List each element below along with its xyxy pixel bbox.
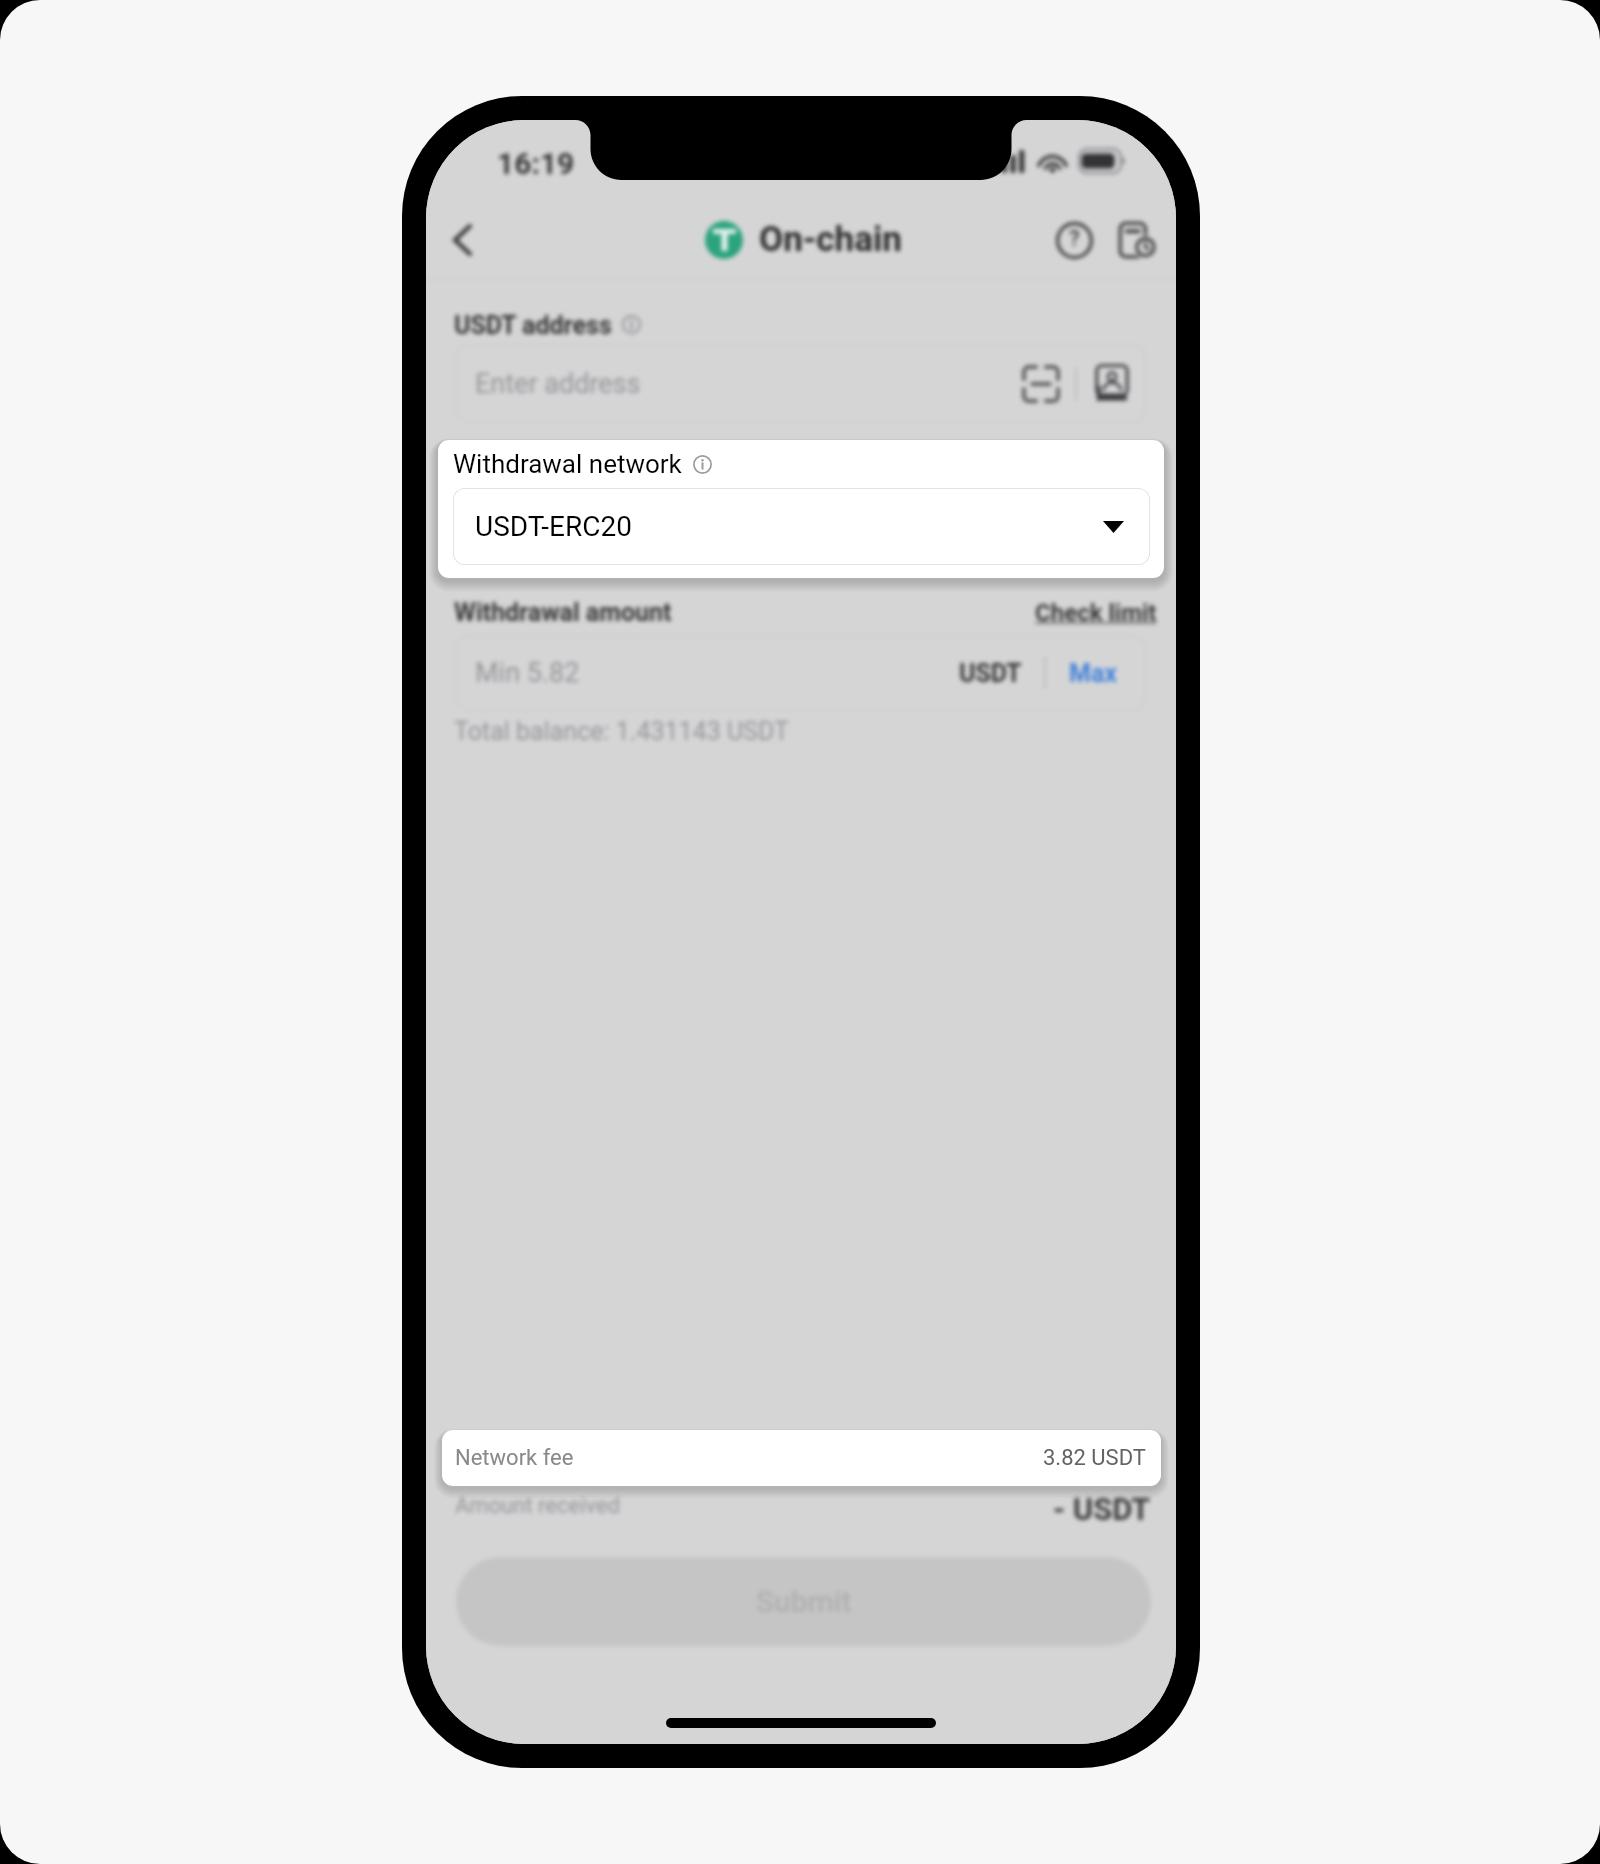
- staticText: Withdrawal network: [454, 458, 677, 487]
- button[interactable]: Help: [1046, 212, 1102, 268]
- staticText: On-chain: [759, 219, 902, 260]
- button[interactable]: More information: [693, 455, 712, 474]
- staticText: USDT: [959, 659, 1022, 688]
- button[interactable]: USDT-ERC20: [453, 488, 1150, 565]
- staticText: Max: [1069, 659, 1118, 688]
- button[interactable]: Scan QR code: [1018, 361, 1064, 407]
- button[interactable]: Min 5.82: [456, 636, 1146, 710]
- staticText: Network fee: [455, 1445, 574, 1471]
- staticText: 16:19: [497, 146, 575, 181]
- staticText: Check limit: [1035, 599, 1157, 627]
- button[interactable]: Network fee: [442, 1430, 1161, 1486]
- staticText: USDT address: [454, 311, 612, 340]
- button[interactable]: Back: [431, 209, 493, 271]
- button[interactable]: Address book: [1089, 361, 1135, 407]
- staticText: Enter address: [475, 368, 641, 400]
- staticText: ?: [1069, 226, 1080, 252]
- staticText: Submit: [756, 1584, 852, 1619]
- button[interactable]: More information: [622, 315, 641, 334]
- button[interactable]: Enter address: [456, 345, 1146, 422]
- staticText: Withdrawal network: [453, 449, 682, 479]
- staticText: Total balance: 1.431143 USDT: [454, 717, 789, 746]
- staticText: - USDT: [1053, 1491, 1151, 1527]
- button[interactable]: Check limit: [1035, 599, 1157, 627]
- staticText: Network fee: [455, 1441, 574, 1467]
- button[interactable]: Transaction history: [1109, 212, 1165, 268]
- staticText: 3.82 USDT: [1043, 1445, 1146, 1471]
- staticText: Min 5.82: [475, 657, 580, 689]
- staticText: Amount received: [455, 1493, 621, 1519]
- button[interactable]: Max: [1069, 659, 1118, 688]
- staticText: USDT-ERC20: [475, 510, 632, 543]
- button[interactable]: Submit: [456, 1557, 1151, 1646]
- staticText: Withdrawal amount: [454, 598, 672, 627]
